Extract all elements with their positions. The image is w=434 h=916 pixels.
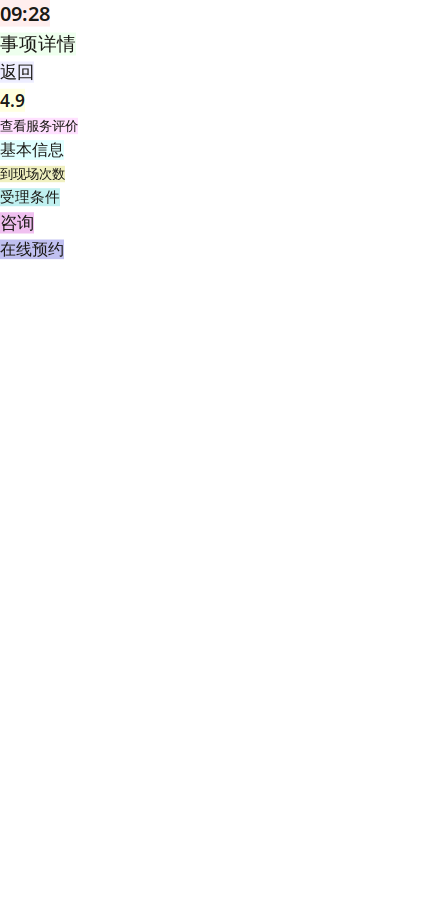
staticText: 4.9 <box>0 89 25 112</box>
staticText: 查看服务评价 <box>0 118 78 134</box>
staticText: 返回 <box>0 61 34 83</box>
staticText: 受理条件 <box>0 188 60 206</box>
staticText: 在线预约 <box>0 239 64 259</box>
staticText: 09:28 <box>0 0 50 27</box>
staticText: 基本信息 <box>0 140 64 160</box>
staticText: 到现场次数 <box>0 166 65 182</box>
staticText: 事项详情 <box>0 33 76 55</box>
staticText: 咨询 <box>0 212 34 233</box>
